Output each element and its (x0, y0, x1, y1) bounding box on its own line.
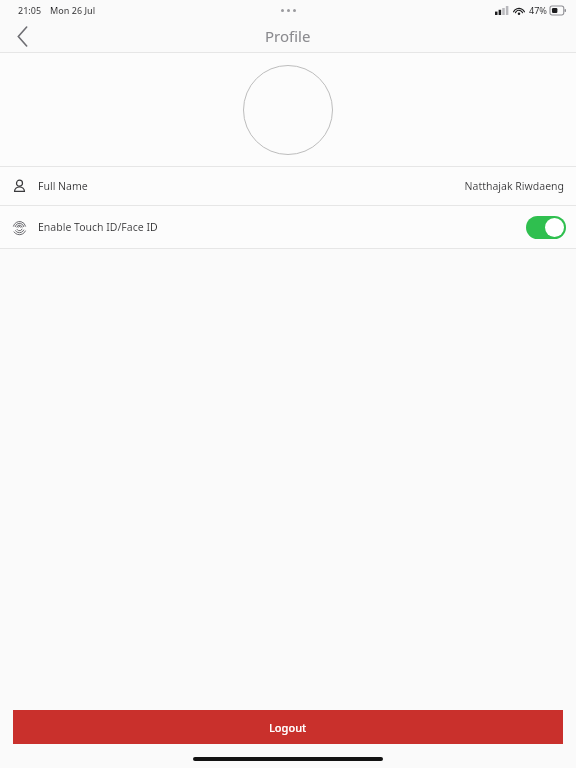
button[interactable]: Enable Touch ID/Face ID (0, 206, 576, 248)
button[interactable]: Logout (13, 710, 563, 744)
staticText: Enable Touch ID/Face ID (38, 220, 158, 234)
staticText: Mon 26 Jul (50, 4, 96, 16)
staticText: Profile (265, 26, 311, 46)
button[interactable]: Back (0, 20, 44, 52)
staticText: 21:05 (18, 4, 42, 16)
staticText: Natthajak Riwdaeng (464, 179, 564, 193)
staticText: Logout (269, 720, 307, 735)
button[interactable]: Full Name (0, 167, 576, 205)
button[interactable]: Profile photo (243, 65, 333, 155)
staticText: 47% (529, 4, 547, 16)
staticText: Full Name (38, 179, 88, 193)
button[interactable]: Enable Touch ID/Face ID toggle (526, 216, 566, 239)
